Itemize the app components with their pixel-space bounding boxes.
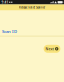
staticText: Next [46,46,54,51]
button[interactable]: Next [44,45,60,53]
staticText: 9:41 [1,0,8,4]
staticText: Release Ticket Scanner [19,6,45,9]
staticText: Scan ID [2,28,17,34]
